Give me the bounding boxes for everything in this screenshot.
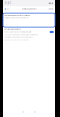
button[interactable]: Opciones <box>48 6 54 11</box>
staticText: Atrás <box>6 8 10 10</box>
staticText: Los valores que aparecen en el documento… <box>4 34 38 36</box>
staticText: Boletín oficial · diciembre <box>22 8 37 10</box>
staticText: Resolución de la consulta tramitada <box>4 14 30 16</box>
staticText: Detalles del expediente <box>4 28 21 30</box>
staticText: Mostrar la información completa del trám… <box>4 31 31 33</box>
button[interactable]: Resolución de la consulta tramitada <box>3 13 55 27</box>
staticText: Solicitud registrada · expediente 2024 <box>4 17 29 19</box>
staticText: orientativos y pueden variar en función … <box>4 36 33 38</box>
staticText: la fuente consultada en cada momento <box>4 39 29 41</box>
button[interactable]: Atrás <box>4 6 11 11</box>
button[interactable]: Mostrar información <box>50 31 54 33</box>
staticText: 9:41 <box>5 1 12 5</box>
